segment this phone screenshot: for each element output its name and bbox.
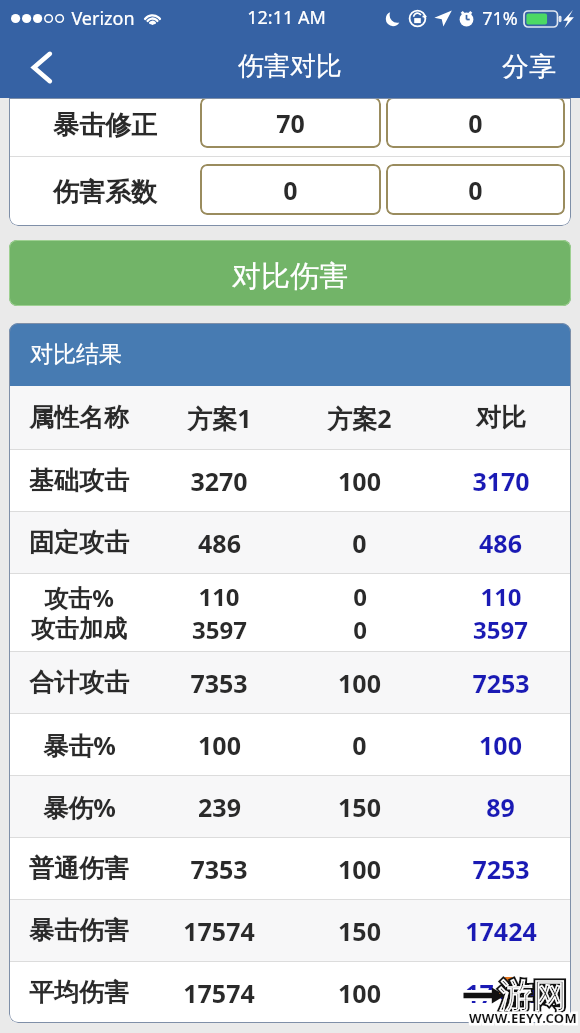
- staticText: 7253: [472, 666, 530, 700]
- staticText: 普通伤害: [29, 853, 129, 884]
- button[interactable]: 分享: [484, 37, 580, 98]
- staticText: 攻击%: [44, 581, 114, 614]
- staticText: 0: [352, 526, 367, 560]
- staticText: 暴击修正: [53, 109, 157, 142]
- staticText: 平均伤害: [29, 977, 129, 1008]
- staticText: 暴击%: [43, 728, 116, 762]
- button[interactable]: 普通伤害: [9, 838, 571, 899]
- staticText: 89: [486, 790, 515, 824]
- staticText: 合计攻击: [29, 667, 129, 698]
- staticText: 暴击伤害: [29, 915, 129, 946]
- staticText: 固定攻击: [29, 527, 129, 558]
- staticText: 100: [198, 728, 241, 762]
- staticText: 属性名称: [29, 402, 129, 433]
- staticText: 110: [480, 580, 522, 613]
- button[interactable]: 对比伤害: [9, 240, 571, 306]
- staticText: 100: [338, 852, 381, 886]
- staticText: 70: [276, 106, 305, 140]
- staticText: 71%: [482, 6, 518, 31]
- staticText: 伤害对比: [238, 50, 342, 83]
- staticText: 17574: [183, 914, 255, 948]
- staticText: 攻击加成: [31, 614, 127, 644]
- staticText: 486: [198, 526, 241, 560]
- staticText: 基础攻击: [29, 465, 129, 496]
- staticText: WWW.EEYY.COM: [469, 1009, 579, 1027]
- staticText: 对比结果: [30, 340, 122, 369]
- staticText: 150: [338, 914, 381, 948]
- staticText: 游网: [499, 974, 580, 1017]
- staticText: 239: [198, 790, 241, 824]
- staticText: 0: [353, 580, 367, 613]
- staticText: 7253: [472, 852, 530, 886]
- staticText: 100: [338, 464, 381, 498]
- button[interactable]: 0: [200, 164, 381, 215]
- button[interactable]: 暴击伤害: [9, 900, 571, 961]
- staticText: 17574: [183, 976, 255, 1010]
- staticText: 方案1: [187, 401, 252, 435]
- staticText: 暴伤%: [43, 790, 116, 824]
- staticText: 150: [338, 790, 381, 824]
- staticText: 486: [479, 526, 522, 560]
- button[interactable]: 合计攻击: [9, 652, 571, 713]
- button[interactable]: 70: [200, 98, 381, 148]
- staticText: 方案2: [327, 401, 392, 435]
- staticText: 0: [352, 728, 367, 762]
- staticText: 17424: [465, 914, 537, 948]
- staticText: 对比: [476, 402, 526, 433]
- button[interactable]: 平均伤害: [9, 962, 571, 1023]
- staticText: 伤害系数: [53, 176, 157, 209]
- staticText: 100: [479, 728, 522, 762]
- button[interactable]: Back: [0, 37, 84, 98]
- button[interactable]: 0: [386, 98, 565, 148]
- button[interactable]: 基础攻击: [9, 450, 571, 511]
- staticText: 12:11 AM: [247, 5, 326, 30]
- staticText: 分享: [502, 50, 556, 84]
- staticText: 3597: [192, 613, 247, 646]
- staticText: 0: [468, 106, 483, 140]
- staticText: 游网: [499, 974, 580, 1017]
- staticText: 100: [338, 666, 381, 700]
- button[interactable]: 固定攻击: [9, 512, 571, 573]
- staticText: WWW.EEYY.COM: [469, 1009, 579, 1027]
- staticText: 7353: [190, 852, 248, 886]
- staticText: Verizon: [71, 6, 135, 31]
- staticText: 0: [353, 613, 367, 646]
- button[interactable]: 暴伤%: [9, 776, 571, 837]
- staticText: 对比伤害: [232, 258, 348, 295]
- staticText: 0: [283, 173, 298, 207]
- staticText: 7353: [190, 666, 248, 700]
- button[interactable]: 攻击%: [9, 574, 571, 651]
- staticText: 110: [198, 580, 240, 613]
- staticText: 0: [468, 173, 483, 207]
- staticText: 100: [338, 976, 381, 1010]
- button[interactable]: 0: [386, 164, 565, 215]
- staticText: 3597: [473, 613, 528, 646]
- button[interactable]: 暴击%: [9, 714, 571, 775]
- staticText: 3270: [190, 464, 248, 498]
- staticText: 3170: [472, 464, 530, 498]
- staticText: 17474: [465, 976, 537, 1010]
